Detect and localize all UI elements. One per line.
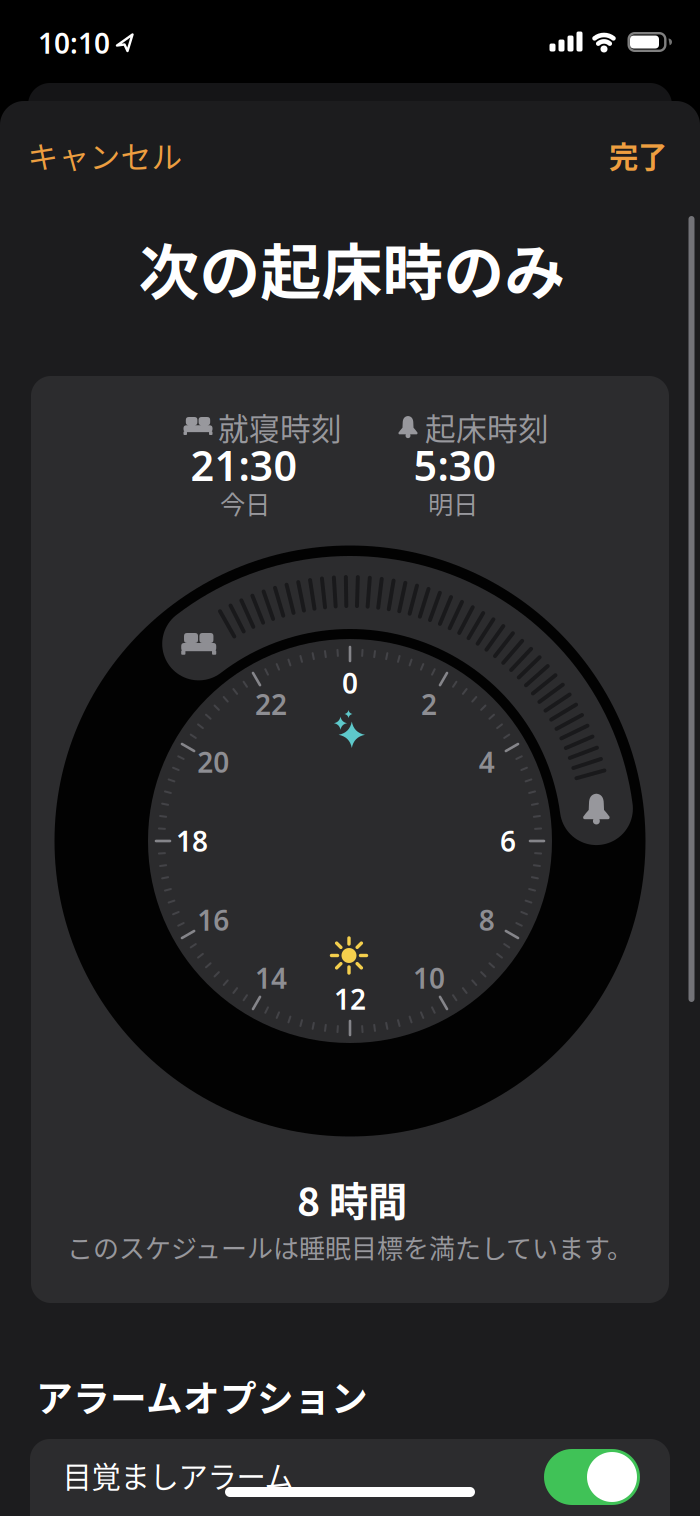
staticText: 22 [255, 686, 287, 723]
staticText: 8 [479, 901, 495, 939]
staticText: 8 時間 [297, 1170, 407, 1227]
staticText: 18 [176, 822, 208, 860]
staticText: 21:30 [190, 438, 297, 492]
staticText: アラームオプション [36, 1369, 368, 1423]
button[interactable]: 目覚ましアラーム [30, 1439, 670, 1516]
staticText: 次の起床時のみ [138, 224, 565, 312]
staticText: 12 [334, 980, 366, 1018]
staticText: 0 [342, 664, 358, 702]
staticText: 16 [197, 901, 229, 939]
staticText: 2 [421, 686, 437, 723]
staticText: 10 [413, 959, 445, 996]
button[interactable]: 完了 [609, 134, 667, 176]
staticText: 今日 [220, 485, 270, 521]
button[interactable]: キャンセル [27, 133, 182, 177]
button[interactable]: 就寝時刻 [181, 632, 216, 655]
staticText: 20 [197, 743, 229, 781]
staticText: このスケジュールは睡眠目標を満たしています。 [67, 1228, 633, 1266]
staticText: 6 [500, 822, 516, 860]
staticText: 起床時刻 [425, 405, 549, 449]
staticText: 4 [479, 743, 495, 781]
staticText: 14 [255, 959, 287, 996]
staticText: 完了 [609, 134, 667, 176]
staticText: 目覚ましアラーム [62, 1454, 293, 1496]
staticText: 就寝時刻 [218, 405, 342, 449]
staticText: キャンセル [27, 133, 182, 177]
staticText: 5:30 [413, 438, 496, 492]
button[interactable]: 起床時刻 [581, 793, 611, 824]
staticText: 明日 [428, 485, 478, 521]
staticText: 10:10 [38, 24, 110, 62]
